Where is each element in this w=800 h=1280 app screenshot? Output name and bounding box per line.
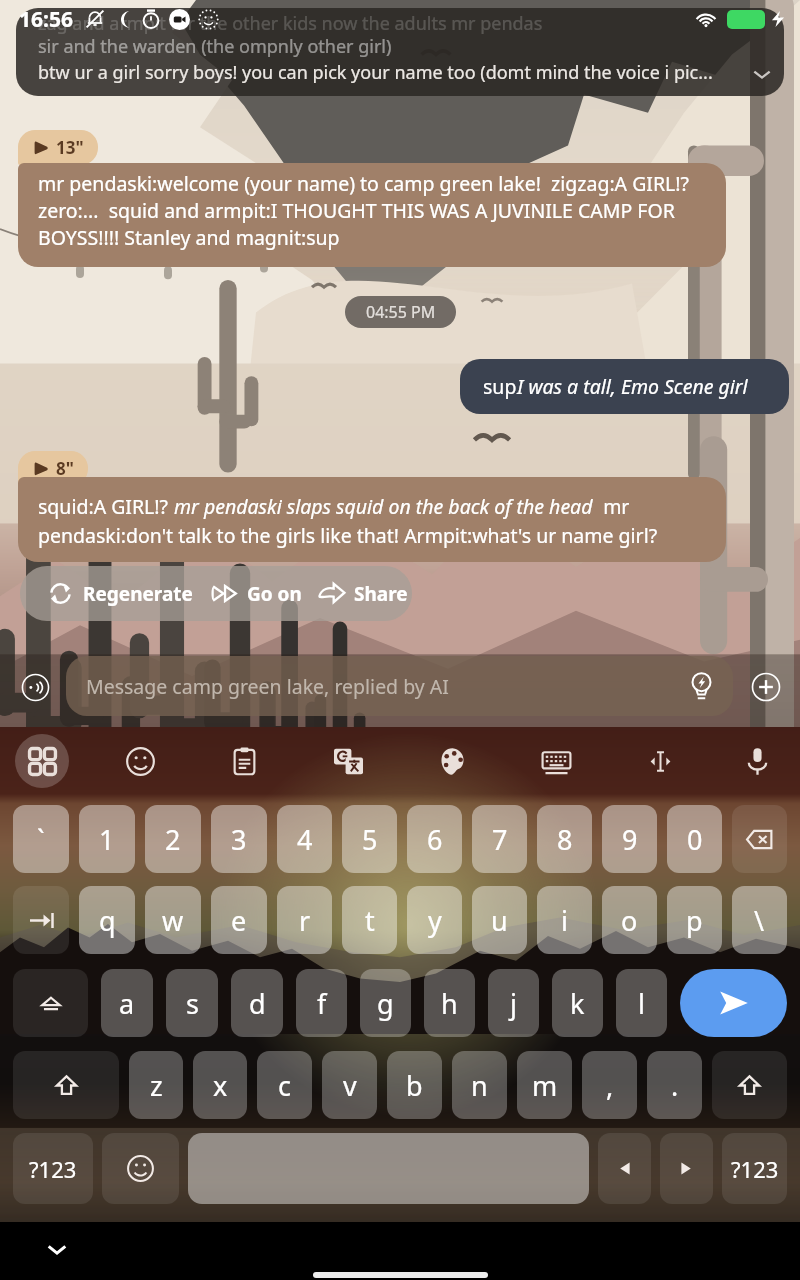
- button[interactable]: Emoji: [102, 1133, 179, 1204]
- staticText: I was a tall, Emo Scene girl: [517, 373, 748, 400]
- button[interactable]: 1: [79, 805, 135, 873]
- button[interactable]: ?123: [722, 1133, 787, 1204]
- button[interactable]: f: [296, 969, 347, 1037]
- button[interactable]: Move left: [598, 1133, 651, 1204]
- button[interactable]: 9: [602, 805, 657, 873]
- button[interactable]: Tab: [13, 886, 69, 954]
- button[interactable]: \: [732, 886, 787, 954]
- staticText: 8: [557, 821, 573, 858]
- button[interactable]: Shift: [712, 1051, 787, 1119]
- staticText: w: [162, 902, 184, 939]
- button[interactable]: Message camp green lake, replied by AI: [66, 656, 733, 716]
- staticText: 3: [231, 821, 247, 858]
- staticText: l: [638, 985, 645, 1022]
- button[interactable]: Hide keyboard: [36, 1228, 78, 1270]
- button[interactable]: Translate: [321, 734, 375, 788]
- button[interactable]: v: [322, 1051, 377, 1119]
- button[interactable]: 7: [472, 805, 527, 873]
- button[interactable]: Voice input: [11, 663, 59, 711]
- button[interactable]: Shift: [13, 1051, 119, 1119]
- button[interactable]: z: [129, 1051, 183, 1119]
- button[interactable]: x: [193, 1051, 247, 1119]
- button[interactable]: k: [552, 969, 603, 1037]
- staticText: btw ur a girl sorry boys! you can pick y…: [38, 60, 713, 85]
- staticText: z: [150, 1067, 163, 1104]
- button[interactable]: e: [211, 886, 267, 954]
- button[interactable]: Add attachment: [742, 663, 790, 711]
- button[interactable]: ,: [582, 1051, 637, 1119]
- staticText: 04:55 PM: [366, 301, 436, 323]
- button[interactable]: w: [145, 886, 201, 954]
- staticText: f: [317, 985, 327, 1022]
- button[interactable]: 3: [211, 805, 267, 873]
- staticText: d: [249, 985, 266, 1022]
- button[interactable]: Share: [318, 580, 408, 607]
- button[interactable]: `: [13, 805, 69, 873]
- button[interactable]: h: [424, 969, 475, 1037]
- button[interactable]: Go on: [211, 580, 302, 607]
- button[interactable]: sup: [460, 359, 789, 414]
- staticText: 5: [362, 821, 378, 858]
- staticText: u: [491, 902, 508, 939]
- button[interactable]: n: [452, 1051, 507, 1119]
- button[interactable]: 2: [145, 805, 201, 873]
- button[interactable]: ?123: [13, 1133, 93, 1204]
- button[interactable]: Voice: [730, 734, 784, 788]
- button[interactable]: j: [488, 969, 539, 1037]
- button[interactable]: zag and armpit for the other kids now th…: [16, 8, 784, 96]
- staticText: 2: [165, 821, 181, 858]
- button[interactable]: Emoji: [113, 734, 167, 788]
- staticText: \: [754, 902, 765, 939]
- button[interactable]: Regenerate: [47, 580, 193, 607]
- button[interactable]: Space: [188, 1133, 589, 1204]
- button[interactable]: Send: [680, 969, 787, 1037]
- staticText: Message camp green lake, replied by AI: [86, 673, 449, 700]
- staticText: 13": [56, 136, 84, 159]
- button[interactable]: a: [101, 969, 153, 1037]
- button[interactable]: r: [277, 886, 332, 954]
- button[interactable]: 8: [537, 805, 592, 873]
- button[interactable]: Caps lock: [13, 969, 88, 1037]
- staticText: 1: [99, 821, 115, 858]
- staticText: 9: [622, 821, 638, 858]
- button[interactable]: i: [537, 886, 592, 954]
- button[interactable]: mr pendaski:welcome (your name) to camp …: [18, 163, 726, 267]
- button[interactable]: Clipboard: [217, 734, 271, 788]
- button[interactable]: c: [257, 1051, 312, 1119]
- button[interactable]: o: [602, 886, 657, 954]
- button[interactable]: 0: [667, 805, 722, 873]
- button[interactable]: g: [360, 969, 411, 1037]
- button[interactable]: .: [647, 1051, 702, 1119]
- button[interactable]: 8": [18, 451, 88, 486]
- staticText: Go on: [247, 581, 302, 607]
- button[interactable]: u: [472, 886, 527, 954]
- button[interactable]: Backspace: [732, 805, 787, 873]
- button[interactable]: 6: [407, 805, 462, 873]
- button[interactable]: s: [166, 969, 218, 1037]
- button[interactable]: d: [231, 969, 283, 1037]
- button[interactable]: m: [517, 1051, 572, 1119]
- button[interactable]: Move right: [660, 1133, 713, 1204]
- button[interactable]: p: [667, 886, 722, 954]
- staticText: ?123: [29, 1154, 77, 1184]
- button[interactable]: squid:A GIRL!?: [18, 477, 726, 562]
- button[interactable]: l: [616, 969, 667, 1037]
- staticText: mr pendaski:welcome (your name) to camp …: [38, 170, 710, 251]
- button[interactable]: t: [342, 886, 397, 954]
- button[interactable]: Text edit: [633, 734, 687, 788]
- button[interactable]: q: [79, 886, 135, 954]
- staticText: squid:A GIRL!?: [38, 493, 174, 520]
- staticText: h: [441, 985, 458, 1022]
- staticText: r: [299, 902, 311, 939]
- staticText: b: [406, 1067, 423, 1104]
- button[interactable]: 4: [277, 805, 332, 873]
- staticText: 6: [427, 821, 443, 858]
- button[interactable]: Apps: [15, 734, 69, 788]
- button[interactable]: Theme: [425, 734, 479, 788]
- button[interactable]: Keyboard layout: [529, 734, 583, 788]
- button[interactable]: 5: [342, 805, 397, 873]
- staticText: zag and armpit for the other kids now th…: [38, 11, 543, 36]
- button[interactable]: y: [407, 886, 462, 954]
- button[interactable]: b: [387, 1051, 442, 1119]
- button[interactable]: 13": [18, 130, 98, 165]
